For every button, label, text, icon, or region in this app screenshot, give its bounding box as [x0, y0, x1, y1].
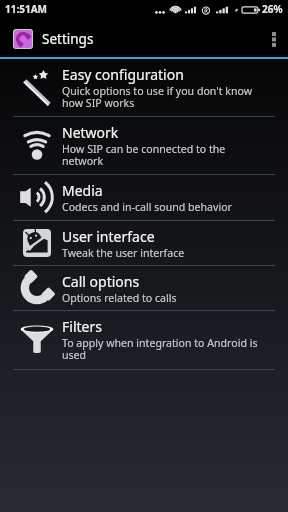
- button[interactable]: Network: [0, 117, 288, 174]
- button[interactable]: Media: [0, 175, 288, 220]
- staticText: To apply when integration to Android is …: [62, 336, 268, 363]
- button[interactable]: Call options: [0, 266, 288, 310]
- staticText: 11:51AM: [5, 2, 48, 16]
- staticText: How SIP can be connected to the network: [62, 142, 268, 169]
- button[interactable]: More options: [260, 18, 288, 57]
- button[interactable]: User interface: [0, 221, 288, 265]
- button[interactable]: Filters: [0, 311, 288, 369]
- button[interactable]: App icon: [14, 30, 32, 48]
- button[interactable]: Easy configuration: [0, 59, 288, 116]
- staticText: Media: [62, 181, 103, 200]
- staticText: Quick options to use if you don't know h…: [62, 84, 268, 111]
- staticText: Filters: [62, 317, 102, 336]
- staticText: Easy configuration: [62, 65, 184, 84]
- staticText: Settings: [42, 30, 94, 48]
- staticText: Options related to calls: [62, 291, 177, 305]
- staticText: Codecs and in-call sound behavior: [62, 200, 232, 214]
- staticText: User interface: [62, 227, 155, 246]
- staticText: Network: [62, 123, 119, 142]
- staticText: Call options: [62, 272, 140, 291]
- staticText: Tweak the user interface: [62, 246, 185, 260]
- staticText: 26%: [262, 2, 283, 16]
